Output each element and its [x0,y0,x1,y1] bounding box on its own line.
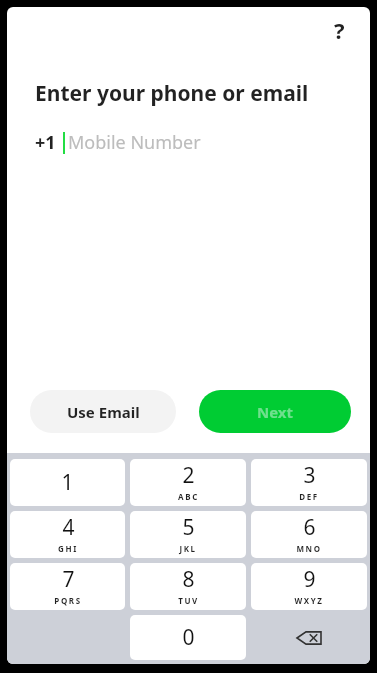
button[interactable]: 8 [130,563,246,610]
staticText: PQRS [54,595,82,606]
staticText: Next [257,402,294,422]
staticText: JKL [179,543,197,554]
staticText: +1 [35,130,56,155]
staticText: 6 [303,513,316,542]
button[interactable]: 6 [251,511,367,558]
staticText: Use Email [67,402,140,422]
staticText: WXYZ [294,595,324,606]
staticText: 0 [182,623,195,652]
button[interactable]: 9 [251,563,367,610]
button[interactable]: 2 [130,459,246,506]
button[interactable]: 5 [130,511,246,558]
button[interactable]: Backspace [251,615,367,660]
staticText: ? [334,15,345,45]
staticText: 2 [182,461,195,490]
staticText: 7 [62,565,75,594]
staticText: GHI [58,543,78,554]
staticText: 3 [303,461,316,490]
button[interactable]: 7 [10,563,125,610]
staticText: MNO [296,543,322,554]
staticText: 9 [303,565,316,594]
staticText: Mobile Number [68,130,201,155]
staticText: 5 [182,513,195,542]
button[interactable]: Help [322,13,356,47]
staticText: TUV [178,595,199,606]
button[interactable]: 3 [251,459,367,506]
button[interactable]: Next [199,390,351,433]
staticText: Enter your phone or email [35,79,309,108]
button[interactable]: 4 [10,511,125,558]
button[interactable]: +1 [35,130,350,155]
staticText: ABC [178,491,199,502]
button[interactable]: Use Email [30,390,176,433]
staticText: DEF [299,491,319,502]
staticText: 1 [61,468,74,497]
button[interactable]: 0 [130,615,246,660]
staticText: 8 [182,565,195,594]
staticText: 4 [62,513,75,542]
button[interactable]: 1 [10,459,125,506]
